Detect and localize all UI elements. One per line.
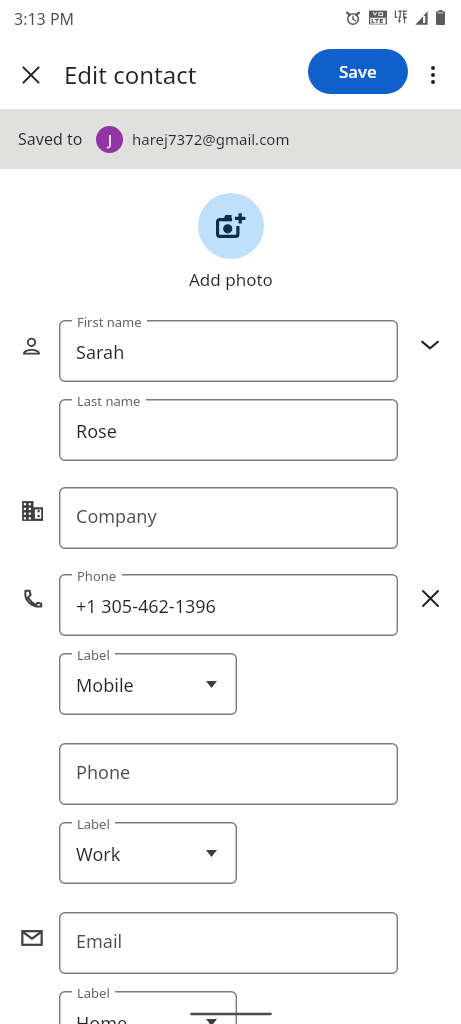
button[interactable]: Company — [59, 487, 398, 549]
staticText: Saved to — [18, 128, 83, 150]
staticText: Label — [77, 984, 110, 1002]
button[interactable]: Email — [59, 912, 398, 974]
button[interactable]: Home — [59, 991, 237, 1024]
staticText: Company — [76, 504, 157, 529]
staticText: Label — [77, 646, 110, 664]
button[interactable]: Phone — [59, 743, 398, 805]
staticText: Label — [77, 815, 110, 833]
staticText: Mobile — [76, 673, 134, 698]
button[interactable]: Saved to — [0, 109, 461, 169]
button[interactable]: Save — [308, 49, 408, 94]
staticText: Add photo — [189, 268, 273, 291]
staticText: Edit contact — [64, 58, 197, 91]
button[interactable]: Mobile — [59, 653, 237, 715]
staticText: Home — [76, 1011, 128, 1024]
staticText: Last name — [77, 392, 141, 410]
staticText: J — [108, 130, 112, 149]
other: Add photo — [217, 212, 246, 241]
staticText: harej7372@gmail.com — [132, 129, 290, 149]
button[interactable]: More options — [413, 55, 453, 95]
staticText: Save — [339, 60, 377, 83]
button[interactable]: Expand name fields — [408, 323, 452, 367]
staticText: Phone — [76, 760, 131, 785]
staticText: Phone — [77, 567, 117, 585]
button[interactable]: +1 305-462-1396 — [59, 574, 398, 636]
button[interactable]: Close — [9, 53, 53, 97]
button[interactable]: Work — [59, 822, 237, 884]
button[interactable]: Clear phone — [408, 576, 452, 620]
staticText: Work — [76, 842, 121, 867]
staticText: Rose — [76, 419, 117, 444]
button[interactable]: Sarah — [59, 320, 398, 382]
button[interactable]: Rose — [59, 399, 398, 461]
button[interactable]: Add photo — [161, 193, 301, 291]
staticText: Sarah — [76, 340, 125, 365]
staticText: +1 305-462-1396 — [76, 594, 216, 619]
staticText: First name — [77, 313, 142, 331]
staticText: Email — [76, 929, 123, 954]
staticText: 3:13 PM — [14, 8, 75, 30]
